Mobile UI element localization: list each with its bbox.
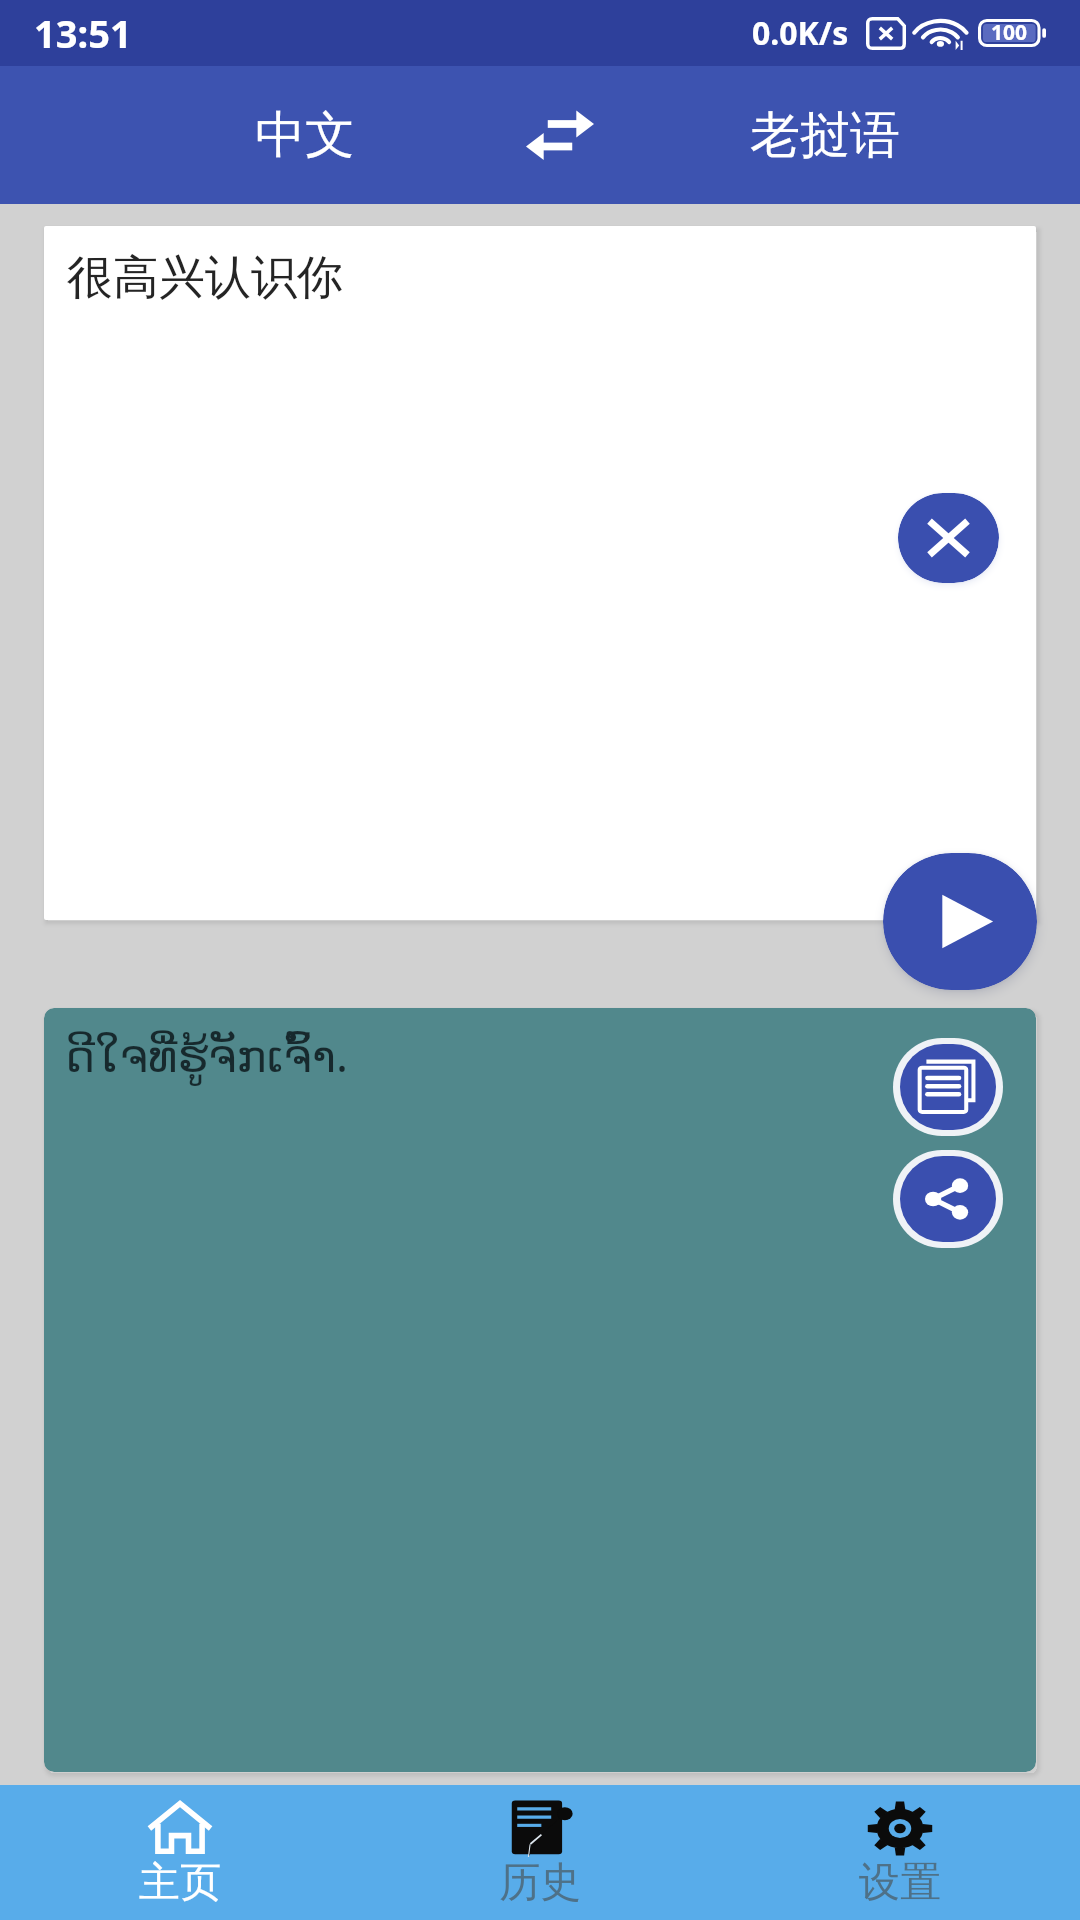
staticText: 很高兴认识你: [67, 249, 343, 307]
button[interactable]: 主页: [0, 1785, 360, 1920]
button[interactable]: 中文: [150, 66, 460, 204]
staticText: 13:51: [34, 7, 132, 59]
button[interactable]: 设置: [720, 1785, 1080, 1920]
staticText: 历史: [499, 1857, 581, 1909]
staticText: ດີໃຈທີ່ຮູ້ຈັກເຈົ້າ.: [65, 1024, 349, 1085]
button[interactable]: Clear: [898, 493, 999, 583]
button[interactable]: 老挝语: [660, 66, 990, 204]
staticText: 0.0K/s: [752, 11, 849, 55]
button[interactable]: Copy: [900, 1044, 996, 1130]
staticText: 中文: [255, 104, 355, 167]
button[interactable]: Share: [900, 1156, 996, 1242]
staticText: 老挝语: [750, 104, 900, 167]
button[interactable]: Swap languages: [470, 66, 650, 204]
button[interactable]: Play: [883, 853, 1037, 990]
staticText: 设置: [859, 1857, 941, 1909]
staticText: 100: [991, 18, 1028, 46]
staticText: 主页: [139, 1857, 221, 1909]
button[interactable]: 历史: [360, 1785, 720, 1920]
